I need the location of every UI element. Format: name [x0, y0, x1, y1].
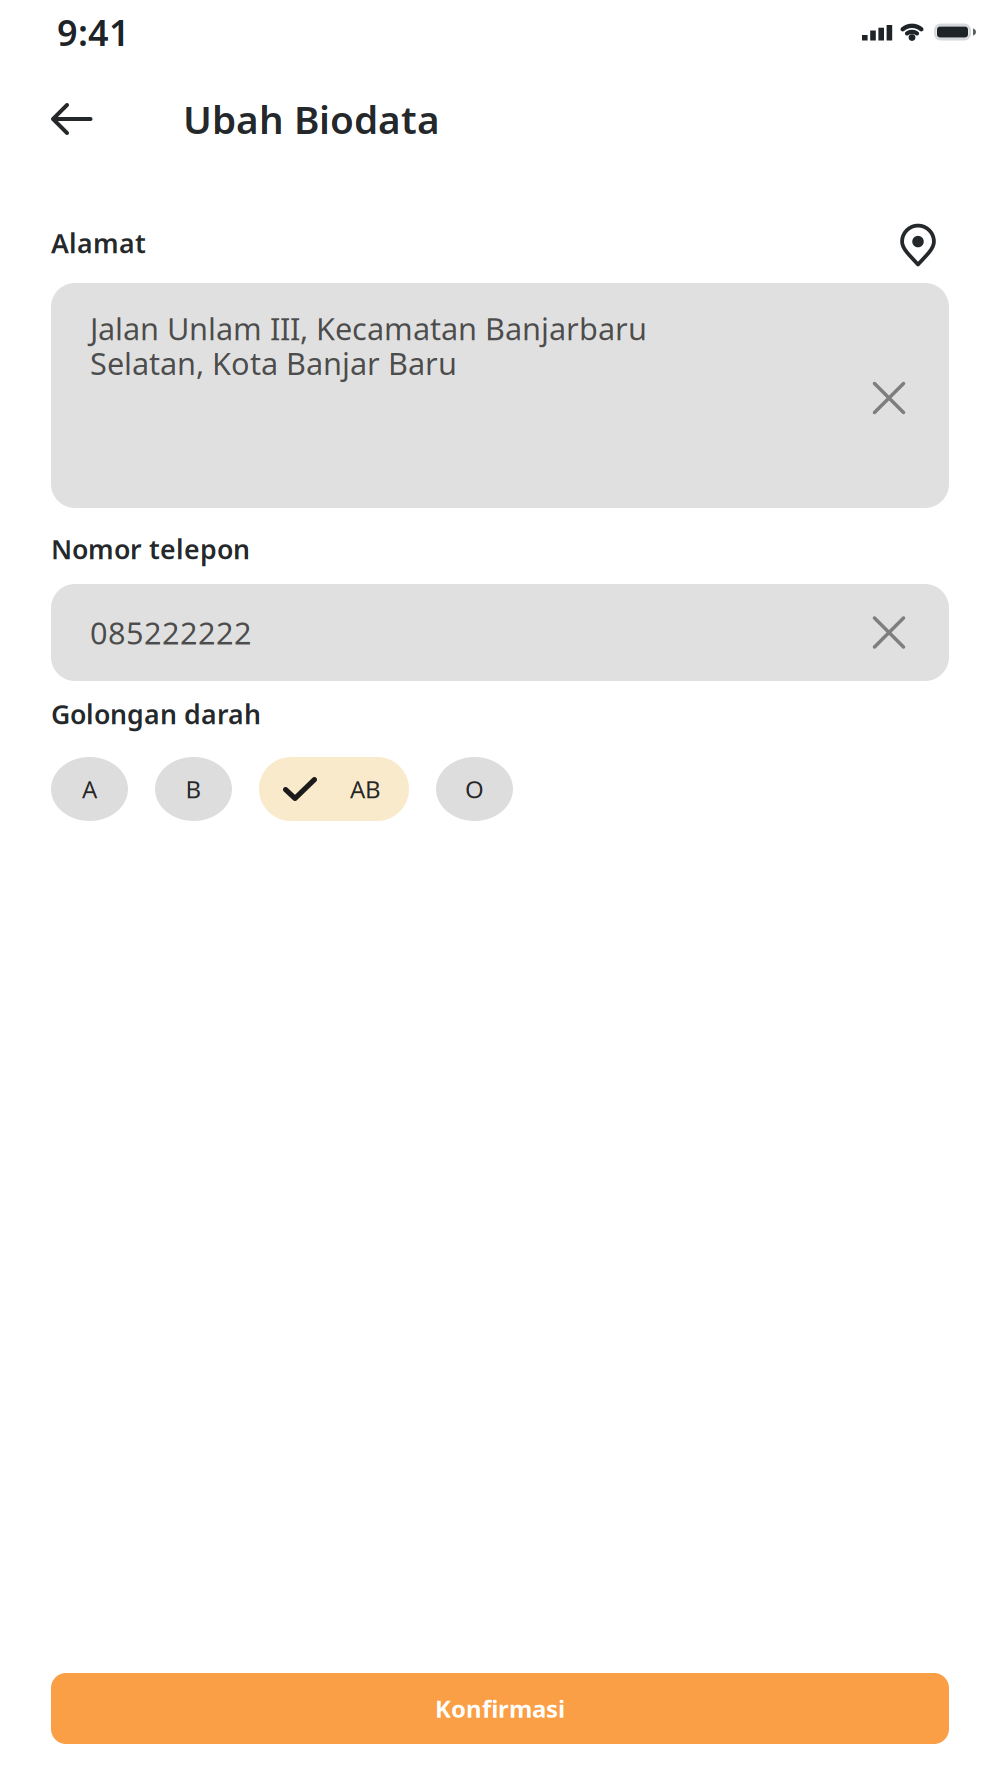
- button[interactable]: AB: [259, 757, 409, 821]
- staticText: 9:41: [57, 8, 130, 56]
- button[interactable]: Clear address: [860, 369, 918, 427]
- staticText: 085222222: [90, 612, 252, 653]
- staticText: B: [185, 773, 201, 805]
- button[interactable]: Clear phone number: [860, 603, 918, 661]
- staticText: Golongan darah: [51, 696, 261, 732]
- staticText: Konfirmasi: [435, 1693, 565, 1724]
- staticText: AB: [350, 773, 381, 805]
- button[interactable]: A: [51, 757, 128, 821]
- button[interactable]: Konfirmasi: [51, 1673, 949, 1744]
- staticText: Ubah Biodata: [183, 93, 440, 145]
- button[interactable]: O: [436, 757, 513, 821]
- button[interactable]: Jalan Unlam III, Kecamatan Banjarbaru Se…: [51, 283, 949, 508]
- button[interactable]: Back: [44, 97, 100, 141]
- button[interactable]: 085222222: [51, 584, 949, 681]
- staticText: A: [82, 773, 97, 805]
- staticText: Jalan Unlam III, Kecamatan Banjarbaru Se…: [90, 308, 647, 383]
- button[interactable]: B: [155, 757, 232, 821]
- button[interactable]: Pick location on map: [893, 219, 949, 267]
- staticText: Alamat: [51, 225, 146, 261]
- staticText: O: [465, 773, 484, 805]
- staticText: Nomor telepon: [51, 531, 250, 567]
